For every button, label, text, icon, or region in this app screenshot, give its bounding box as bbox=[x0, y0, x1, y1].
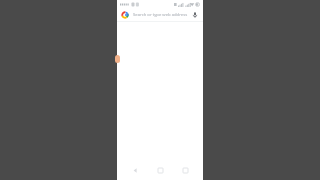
button[interactable]: Home bbox=[153, 163, 167, 177]
staticText: Search or type web address bbox=[133, 12, 188, 18]
button[interactable]: Back bbox=[128, 163, 142, 177]
button[interactable]: Voice search bbox=[190, 10, 199, 19]
button[interactable]: Search or type web address bbox=[117, 8, 203, 21]
button[interactable]: Recent apps bbox=[178, 163, 192, 177]
